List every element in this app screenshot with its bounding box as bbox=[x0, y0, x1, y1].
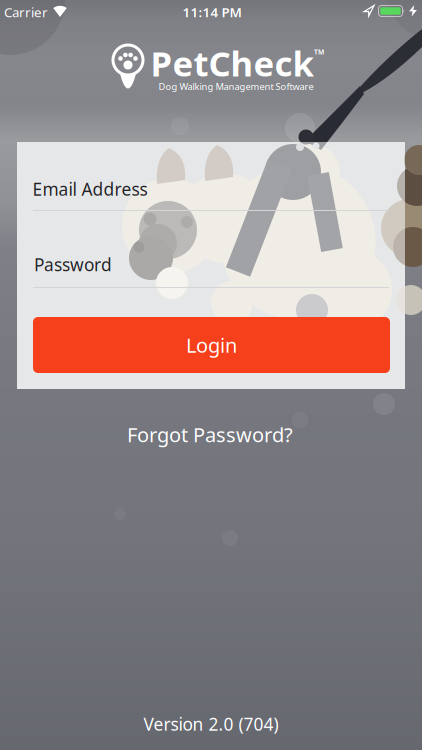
staticText: Carrier bbox=[4, 3, 48, 21]
staticText: Login bbox=[186, 332, 237, 358]
staticText: Email Address bbox=[32, 177, 147, 200]
staticText: 11:14 PM bbox=[182, 3, 241, 21]
staticText: Password bbox=[34, 253, 112, 276]
button[interactable]: Forgot Password? bbox=[127, 421, 293, 448]
button[interactable]: Email Address bbox=[33, 164, 389, 211]
button[interactable]: Password bbox=[33, 241, 389, 288]
staticText: Forgot Password? bbox=[127, 421, 293, 448]
staticText: TM bbox=[314, 48, 324, 56]
staticText: PetCheck bbox=[150, 40, 313, 86]
staticText: Version 2.0 (704) bbox=[143, 712, 278, 735]
staticText: Dog Walking Management Software bbox=[158, 80, 313, 93]
button[interactable]: Login bbox=[33, 317, 390, 373]
